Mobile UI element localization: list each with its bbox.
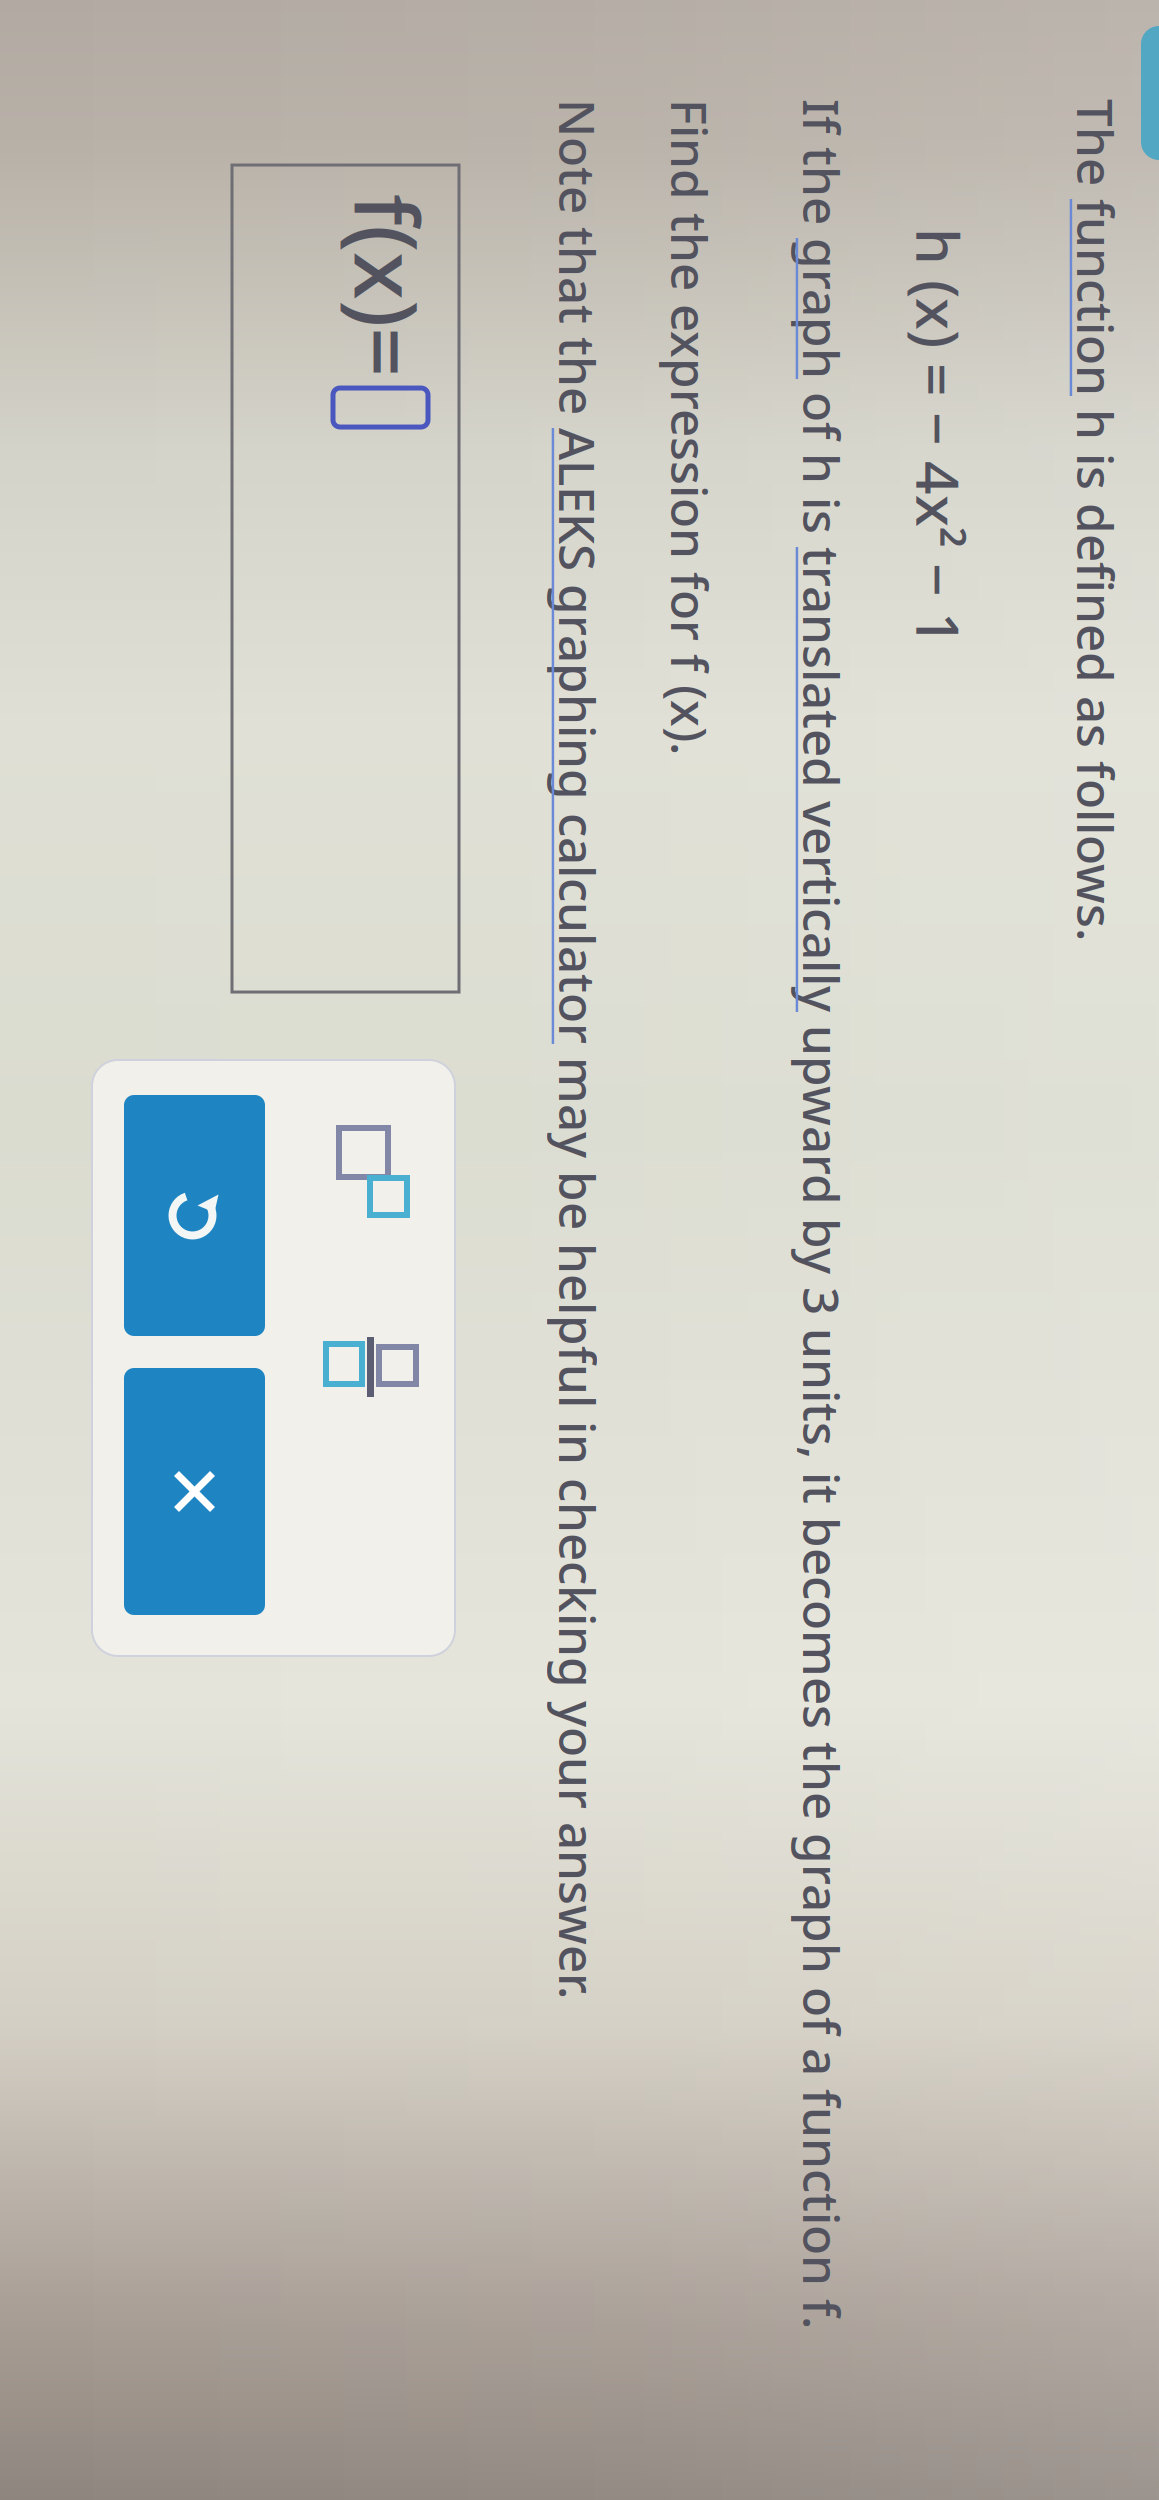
staticText: The function h is defined as follows. [0,700,270,766]
staticText: Note that the ALEKS graphing calculator … [0,1218,1159,1284]
button[interactable]: Undo [424,1564,665,1705]
button[interactable]: Close [697,1564,944,1705]
staticText: If the graph of h is translated vertical… [0,974,1159,1040]
